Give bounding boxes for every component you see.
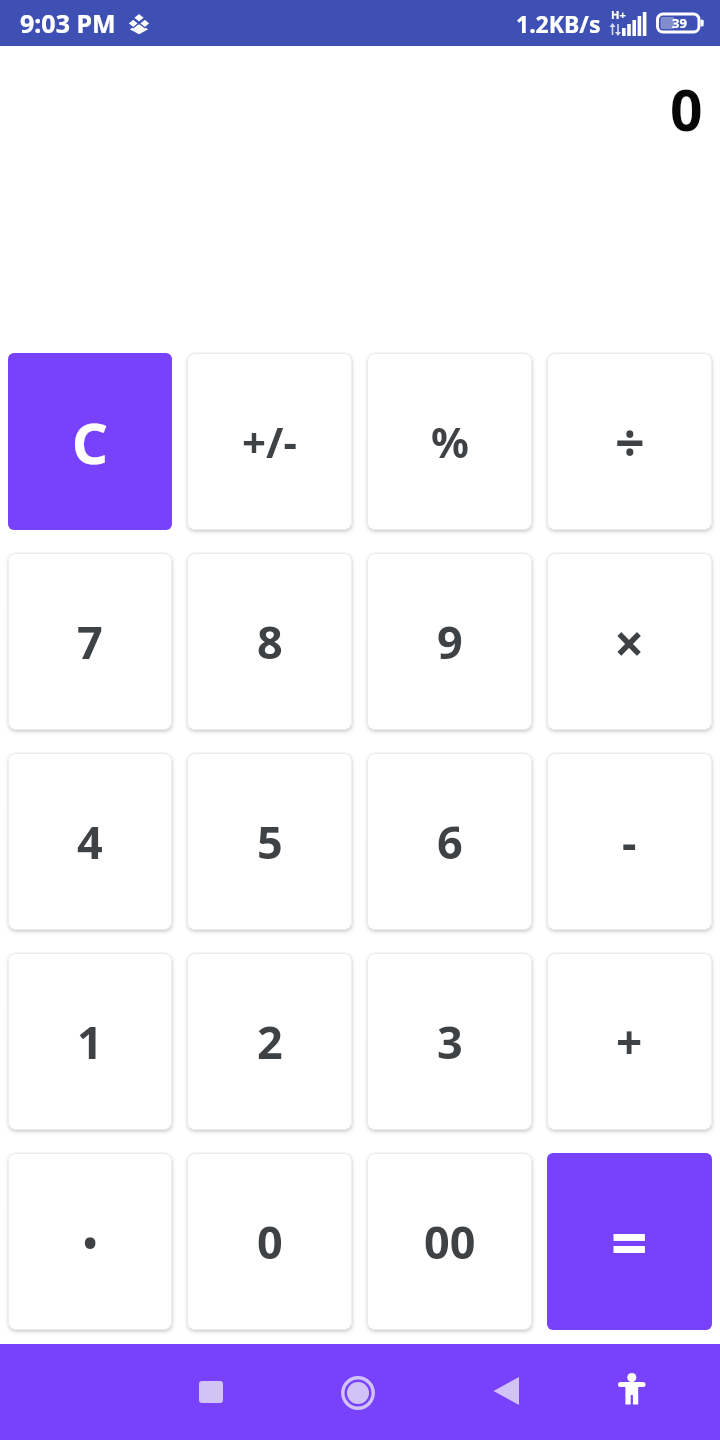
staticText: C bbox=[72, 404, 108, 480]
staticText: 2 bbox=[257, 1011, 283, 1072]
staticText: - bbox=[622, 811, 637, 872]
staticText: 5 bbox=[257, 811, 283, 872]
button[interactable]: 8 bbox=[187, 553, 352, 730]
button[interactable]: - bbox=[547, 753, 712, 930]
button[interactable]: 00 bbox=[367, 1153, 532, 1330]
staticText: % bbox=[431, 413, 469, 470]
staticText: ÷ bbox=[615, 406, 645, 477]
button[interactable] bbox=[615, 1372, 649, 1406]
button[interactable]: 9 bbox=[367, 553, 532, 730]
button[interactable]: 4 bbox=[8, 753, 172, 930]
staticText: 1.2KB/s bbox=[516, 8, 601, 39]
button[interactable] bbox=[199, 1381, 223, 1403]
button[interactable]: C bbox=[8, 353, 172, 530]
staticText: • bbox=[83, 1216, 98, 1268]
staticText: 0 bbox=[670, 70, 703, 148]
button[interactable]: = bbox=[547, 1153, 712, 1330]
button[interactable]: 2 bbox=[187, 953, 352, 1130]
staticText: 0 bbox=[257, 1211, 283, 1272]
staticText: 1 bbox=[77, 1011, 103, 1072]
button[interactable]: 6 bbox=[367, 753, 532, 930]
staticText: 9:03 PM bbox=[20, 6, 116, 40]
staticText: 9 bbox=[437, 611, 463, 672]
button[interactable]: 0 bbox=[187, 1153, 352, 1330]
button[interactable]: × bbox=[547, 553, 712, 730]
staticText: H+ bbox=[611, 7, 626, 22]
staticText: 8 bbox=[257, 611, 283, 672]
staticText: = bbox=[611, 1198, 648, 1285]
button[interactable]: ÷ bbox=[547, 353, 712, 530]
staticText: 7 bbox=[77, 611, 103, 672]
staticText: 39 bbox=[672, 14, 687, 32]
staticText: 6 bbox=[437, 811, 463, 872]
button[interactable]: 3 bbox=[367, 953, 532, 1130]
button[interactable]: % bbox=[367, 353, 532, 530]
staticText: + bbox=[616, 1010, 643, 1073]
staticText: +/- bbox=[242, 413, 297, 470]
button[interactable]: 1 bbox=[8, 953, 172, 1130]
staticText: 00 bbox=[424, 1211, 476, 1272]
button[interactable]: + bbox=[547, 953, 712, 1130]
button[interactable]: • bbox=[8, 1153, 172, 1330]
staticText: 3 bbox=[437, 1011, 463, 1072]
staticText: 4 bbox=[77, 811, 103, 872]
button[interactable]: 5 bbox=[187, 753, 352, 930]
button[interactable]: 7 bbox=[8, 553, 172, 730]
button[interactable]: +/- bbox=[187, 353, 352, 530]
button[interactable] bbox=[490, 1374, 522, 1406]
staticText: × bbox=[614, 606, 645, 678]
button[interactable] bbox=[341, 1376, 375, 1410]
